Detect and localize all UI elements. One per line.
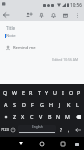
staticText: English (32, 125, 43, 129)
staticText: Y (45, 89, 49, 96)
button[interactable]: ? (57, 123, 65, 136)
button[interactable]: H (46, 98, 55, 110)
staticText: Remind me (13, 45, 36, 51)
button[interactable]: B (45, 110, 54, 123)
staticText: N (56, 113, 61, 120)
staticText: A (4, 101, 8, 108)
staticText: X (21, 113, 25, 120)
button[interactable]: C (27, 110, 36, 123)
button[interactable]: F (28, 98, 37, 110)
staticText: V (39, 113, 43, 120)
button[interactable]: Remind me (5, 45, 36, 51)
button[interactable]: K (64, 98, 73, 110)
staticText: B (48, 113, 52, 120)
staticText: P (77, 89, 81, 96)
staticText: Edited 10:56 AM (5, 57, 78, 62)
button[interactable]: Shift (0, 110, 11, 123)
button[interactable]: Hide keyboard (14, 137, 28, 150)
button[interactable]: Archive (59, 9, 71, 21)
staticText: Title (6, 25, 16, 31)
button[interactable]: J (55, 98, 64, 110)
staticText: S (13, 101, 16, 108)
staticText: H (49, 101, 53, 108)
staticText: O (69, 89, 74, 96)
button[interactable]: R (27, 86, 35, 98)
button[interactable]: , (65, 123, 72, 136)
button[interactable]: M (63, 110, 72, 123)
staticText: I (62, 89, 64, 96)
button[interactable]: N (54, 110, 63, 123)
staticText: Z (13, 113, 17, 120)
staticText: E (22, 89, 25, 96)
button[interactable]: G (37, 98, 46, 110)
staticText: , (68, 127, 70, 133)
button[interactable]: S (10, 98, 19, 110)
staticText: F (31, 101, 34, 108)
button[interactable]: Pin note (35, 9, 47, 21)
button[interactable]: D (19, 98, 28, 110)
staticText: J (59, 101, 61, 108)
staticText: M (65, 113, 70, 120)
staticText: ?123 (1, 127, 9, 132)
staticText: 10:56 (70, 2, 82, 8)
staticText: W (12, 89, 18, 96)
staticText: G (40, 101, 44, 108)
button[interactable]: Reminder (47, 9, 59, 21)
button[interactable]: Home (35, 137, 49, 150)
button[interactable]: V (36, 110, 45, 123)
button[interactable]: W (10, 86, 19, 98)
staticText: D (22, 101, 26, 108)
button[interactable]: Space (18, 125, 56, 134)
button[interactable]: Enter (72, 123, 84, 136)
button[interactable]: T (35, 86, 43, 98)
staticText: ? (60, 127, 62, 133)
button[interactable]: A (2, 98, 10, 110)
button[interactable]: E (19, 86, 27, 98)
button[interactable]: Recents (56, 137, 70, 150)
staticText: L (76, 101, 79, 108)
button[interactable]: Z (11, 110, 19, 123)
staticText: Q (3, 89, 8, 96)
button[interactable]: Emoji (9, 123, 17, 136)
button[interactable]: I (59, 86, 67, 98)
button[interactable]: Backspace (72, 110, 84, 123)
button[interactable]: More options (71, 9, 83, 21)
button[interactable]: Y (43, 86, 51, 98)
button[interactable]: ?123 (0, 123, 9, 136)
staticText: T (38, 89, 41, 96)
staticText: R (29, 89, 33, 96)
button[interactable]: Add collaborator (23, 9, 35, 21)
button[interactable]: X (19, 110, 27, 123)
button[interactable]: U (51, 86, 59, 98)
staticText: U (53, 89, 57, 96)
button[interactable]: O (67, 86, 75, 98)
staticText: K (67, 101, 71, 108)
staticText: Note (6, 33, 16, 39)
staticText: C (30, 113, 34, 120)
button[interactable]: Q (1, 86, 10, 98)
button[interactable]: Change keyboard (71, 138, 83, 150)
button[interactable]: Back (0, 9, 12, 21)
button[interactable]: P (75, 86, 83, 98)
button[interactable]: L (73, 98, 82, 110)
